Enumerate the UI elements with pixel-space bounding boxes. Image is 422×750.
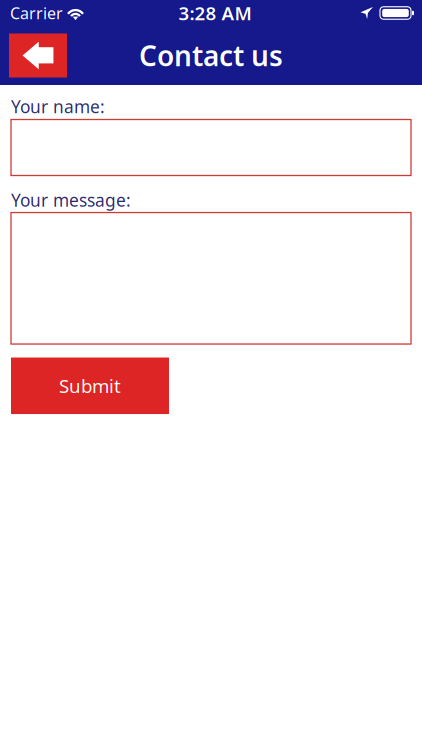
staticText: Contact us (139, 37, 283, 74)
staticText: Your name: (11, 95, 105, 118)
button[interactable]: Back (9, 33, 67, 77)
button[interactable]: Your name (11, 119, 411, 175)
staticText: Submit (59, 373, 121, 398)
button[interactable]: Your message (11, 212, 411, 344)
staticText: Carrier (10, 2, 63, 24)
staticText: 3:28 AM (178, 1, 251, 25)
staticText: Your message: (11, 188, 131, 211)
button[interactable]: Submit (11, 357, 169, 414)
